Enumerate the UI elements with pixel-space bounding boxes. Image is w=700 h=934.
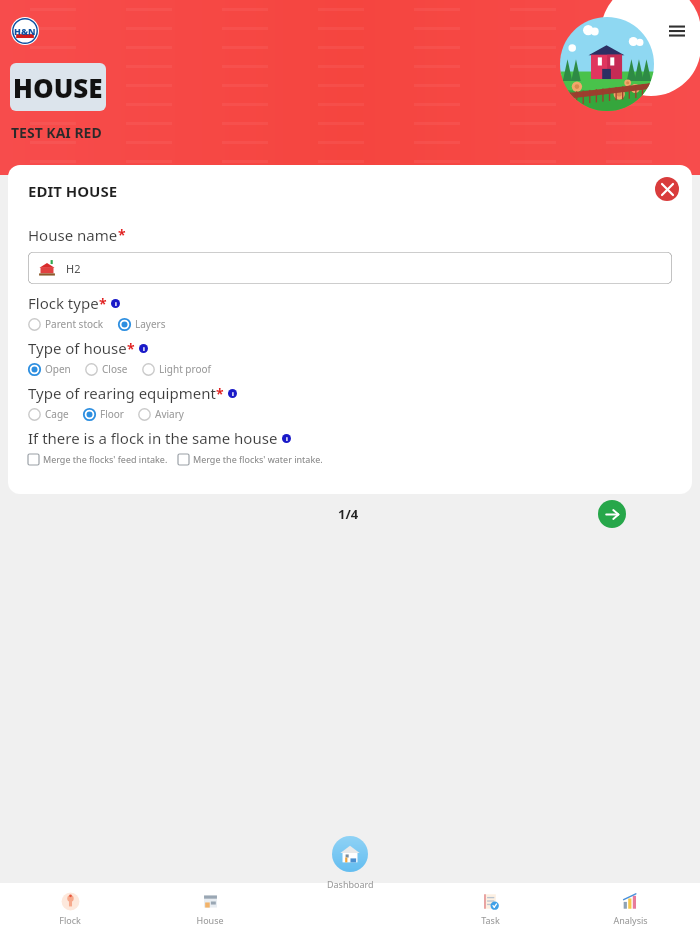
- button[interactable]: Analysis: [560, 883, 700, 934]
- staticText: Flock: [59, 914, 81, 926]
- button[interactable]: Aviary: [138, 407, 184, 421]
- staticText: H&N: [14, 25, 36, 37]
- staticText: Dashboard: [327, 878, 374, 890]
- button[interactable]: Floor: [83, 407, 124, 421]
- button[interactable]: Menu: [663, 16, 691, 44]
- staticText: *: [216, 384, 224, 403]
- button[interactable]: Merge the flocks' feed intake.: [28, 453, 168, 465]
- staticText: Type of rearing equipment: [28, 383, 216, 403]
- button[interactable]: Merge the flocks' water intake.: [178, 453, 323, 465]
- button[interactable]: Close: [655, 177, 679, 201]
- staticText: H2: [66, 261, 81, 276]
- button[interactable]: Parent stock: [28, 317, 104, 331]
- staticText: Merge the flocks' feed intake.: [43, 453, 168, 465]
- staticText: Aviary: [155, 407, 184, 421]
- staticText: Analysis: [613, 914, 648, 926]
- button[interactable]: Next: [598, 500, 626, 528]
- button[interactable]: Farm avatar: [560, 17, 654, 111]
- staticText: Close: [102, 362, 128, 376]
- staticText: Light proof: [159, 362, 211, 376]
- button[interactable]: Open: [28, 362, 71, 376]
- staticText: Open: [45, 362, 71, 376]
- staticText: Task: [481, 914, 500, 926]
- staticText: House name: [28, 225, 118, 245]
- staticText: *: [127, 339, 135, 358]
- button[interactable]: Layers: [118, 317, 166, 331]
- button[interactable]: Close: [85, 362, 128, 376]
- button[interactable]: Flock: [0, 883, 140, 934]
- staticText: Layers: [135, 317, 166, 331]
- staticText: i: [143, 345, 145, 353]
- staticText: Type of house: [28, 338, 127, 358]
- button[interactable]: Task: [420, 883, 560, 934]
- button[interactable]: Dashboard: [332, 836, 368, 872]
- button[interactable]: H2: [28, 252, 672, 284]
- button[interactable]: H&N logo: [11, 17, 39, 45]
- staticText: Merge the flocks' water intake.: [193, 453, 323, 465]
- staticText: Cage: [45, 407, 69, 421]
- staticText: i: [286, 435, 288, 443]
- staticText: Flock type: [28, 293, 99, 313]
- staticText: TEST KAI RED: [11, 123, 102, 142]
- staticText: *: [99, 294, 107, 313]
- staticText: Parent stock: [45, 317, 104, 331]
- staticText: HOUSE: [13, 70, 103, 105]
- staticText: i: [115, 300, 117, 308]
- staticText: i: [232, 390, 234, 398]
- button[interactable]: House: [140, 883, 280, 934]
- button[interactable]: HOUSE: [10, 63, 106, 111]
- staticText: EDIT HOUSE: [28, 181, 118, 201]
- staticText: *: [118, 225, 126, 244]
- staticText: 1/4: [338, 505, 359, 523]
- button[interactable]: Cage: [28, 407, 69, 421]
- button[interactable]: Light proof: [142, 362, 211, 376]
- staticText: Floor: [100, 407, 124, 421]
- staticText: House: [196, 914, 224, 926]
- staticText: If there is a flock in the same house: [28, 428, 278, 448]
